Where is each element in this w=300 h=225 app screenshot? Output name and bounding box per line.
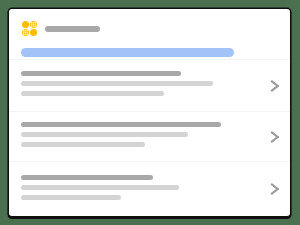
other: Open details — [266, 128, 284, 146]
other: Open details — [266, 180, 284, 198]
button[interactable]: Open details — [9, 162, 290, 216]
button[interactable]: Open details — [9, 112, 290, 161]
button[interactable]: Highlighted item — [21, 48, 234, 57]
button[interactable]: App title — [18, 15, 104, 42]
other: Open details — [266, 77, 284, 95]
button[interactable]: Open details — [9, 60, 290, 111]
